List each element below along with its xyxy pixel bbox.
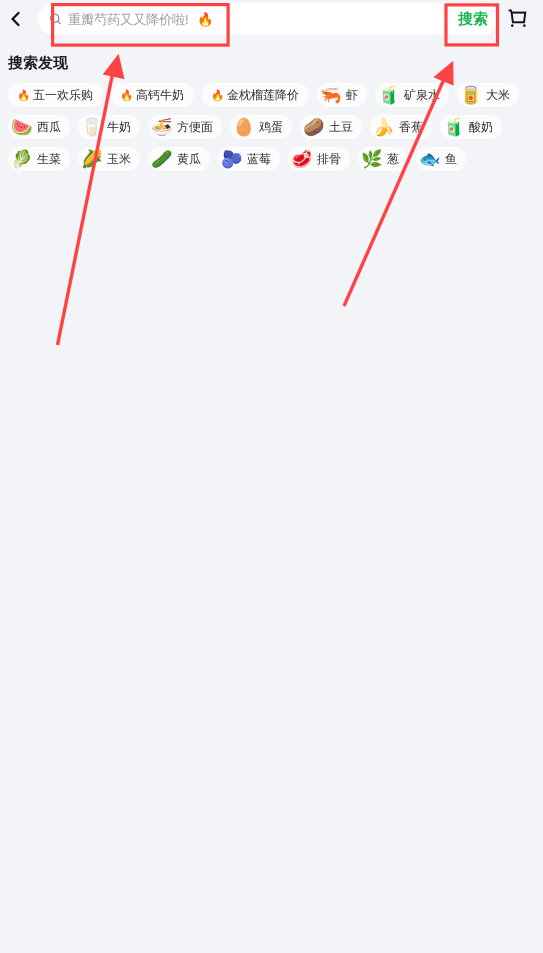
button[interactable]: 🥩 [288, 147, 350, 171]
staticText: 搜索发现 [8, 54, 68, 72]
button[interactable]: 🍜 [148, 115, 222, 139]
staticText: 玉米 [107, 152, 131, 166]
staticText: 🥔 [303, 117, 325, 137]
staticText: 金枕榴莲降价 [227, 88, 299, 102]
button[interactable]: 🥚 [230, 115, 292, 139]
button[interactable]: 🌿 [358, 147, 408, 171]
staticText: 🧃 [443, 117, 465, 137]
staticText: 🥫 [460, 85, 482, 105]
button[interactable]: 搜索 [446, 3, 498, 35]
button[interactable]: Back [2, 0, 30, 38]
staticText: 葱 [387, 152, 399, 166]
staticText: 排骨 [317, 152, 341, 166]
staticText: 搜索 [458, 10, 488, 28]
button[interactable]: 🍌 [370, 115, 432, 139]
staticText: 🥚 [233, 117, 255, 137]
staticText: 🔥 [210, 89, 223, 101]
staticText: 香蕉 [399, 120, 423, 134]
button[interactable]: 🫐 [218, 147, 280, 171]
button[interactable]: 🔥 [111, 83, 194, 107]
staticText: 🥒 [151, 149, 173, 169]
staticText: 土豆 [329, 120, 353, 134]
staticText: 🥛 [81, 117, 103, 137]
staticText: 🥬 [11, 149, 33, 169]
button[interactable]: Shopping cart [508, 0, 526, 38]
staticText: 🦐 [320, 85, 342, 105]
staticText: 牛奶 [107, 120, 131, 134]
staticText: 重瓣芍药又又降价啦! [68, 10, 189, 28]
staticText: 🍌 [373, 117, 395, 137]
button[interactable]: 🔥 [202, 83, 309, 107]
staticText: 高钙牛奶 [136, 88, 184, 102]
button[interactable]: 🥫 [457, 83, 519, 107]
button[interactable]: 🥛 [78, 115, 140, 139]
staticText: 虾 [346, 88, 358, 102]
staticText: 🫐 [221, 149, 243, 169]
staticText: 🔥 [197, 11, 214, 27]
staticText: 黄瓜 [177, 152, 201, 166]
staticText: 🌿 [361, 149, 383, 169]
staticText: 生菜 [37, 152, 61, 166]
button[interactable]: 🔥 [8, 83, 103, 107]
staticText: 鸡蛋 [259, 120, 283, 134]
staticText: 五一欢乐购 [33, 88, 93, 102]
staticText: 🥩 [291, 149, 313, 169]
staticText: 🍉 [11, 117, 33, 137]
staticText: 大米 [486, 88, 510, 102]
button[interactable]: 🧃 [375, 83, 449, 107]
button[interactable]: 🧃 [440, 115, 502, 139]
staticText: 蓝莓 [247, 152, 271, 166]
staticText: 🔥 [119, 89, 132, 101]
staticText: 西瓜 [37, 120, 61, 134]
staticText: 🔥 [16, 89, 29, 101]
staticText: 酸奶 [469, 120, 493, 134]
staticText: 🐟 [419, 149, 441, 169]
button[interactable]: 🌽 [78, 147, 140, 171]
button[interactable]: 🥬 [8, 147, 70, 171]
button[interactable]: 🥒 [148, 147, 210, 171]
staticText: 矿泉水 [404, 88, 440, 102]
button[interactable]: 🍉 [8, 115, 70, 139]
staticText: 🧃 [378, 85, 400, 105]
button[interactable]: 🐟 [416, 147, 466, 171]
staticText: 方便面 [177, 120, 213, 134]
button[interactable]: 🦐 [317, 83, 367, 107]
staticText: 鱼 [445, 152, 457, 166]
staticText: 🌽 [81, 149, 103, 169]
staticText: 🍜 [151, 117, 173, 137]
button[interactable]: 🥔 [300, 115, 362, 139]
button[interactable]: 重瓣芍药又又降价啦! [38, 3, 446, 35]
